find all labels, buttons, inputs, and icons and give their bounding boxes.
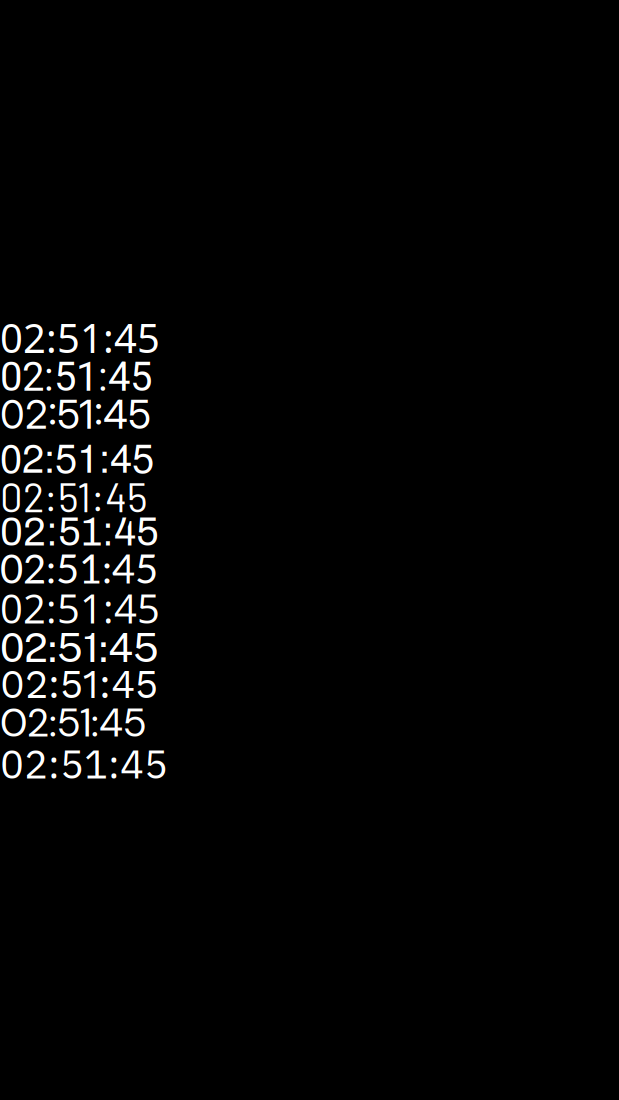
staticText: 02:51:45: [0, 479, 148, 514]
staticText: 02:51:45: [0, 704, 146, 742]
staticText: 02:51:45: [0, 516, 159, 548]
staticText: 02:51:45: [0, 317, 160, 358]
staticText: 02:51:45: [0, 744, 168, 783]
staticText: 02:51:45: [0, 667, 158, 702]
staticText: 02:51:45: [0, 550, 158, 586]
staticText: 02:51:45: [0, 588, 160, 628]
staticText: 02:51:45: [0, 434, 154, 477]
staticText: 02:51:45: [0, 396, 151, 432]
staticText: 02:51:45: [0, 630, 159, 665]
staticText: 02:51:45: [0, 360, 152, 394]
